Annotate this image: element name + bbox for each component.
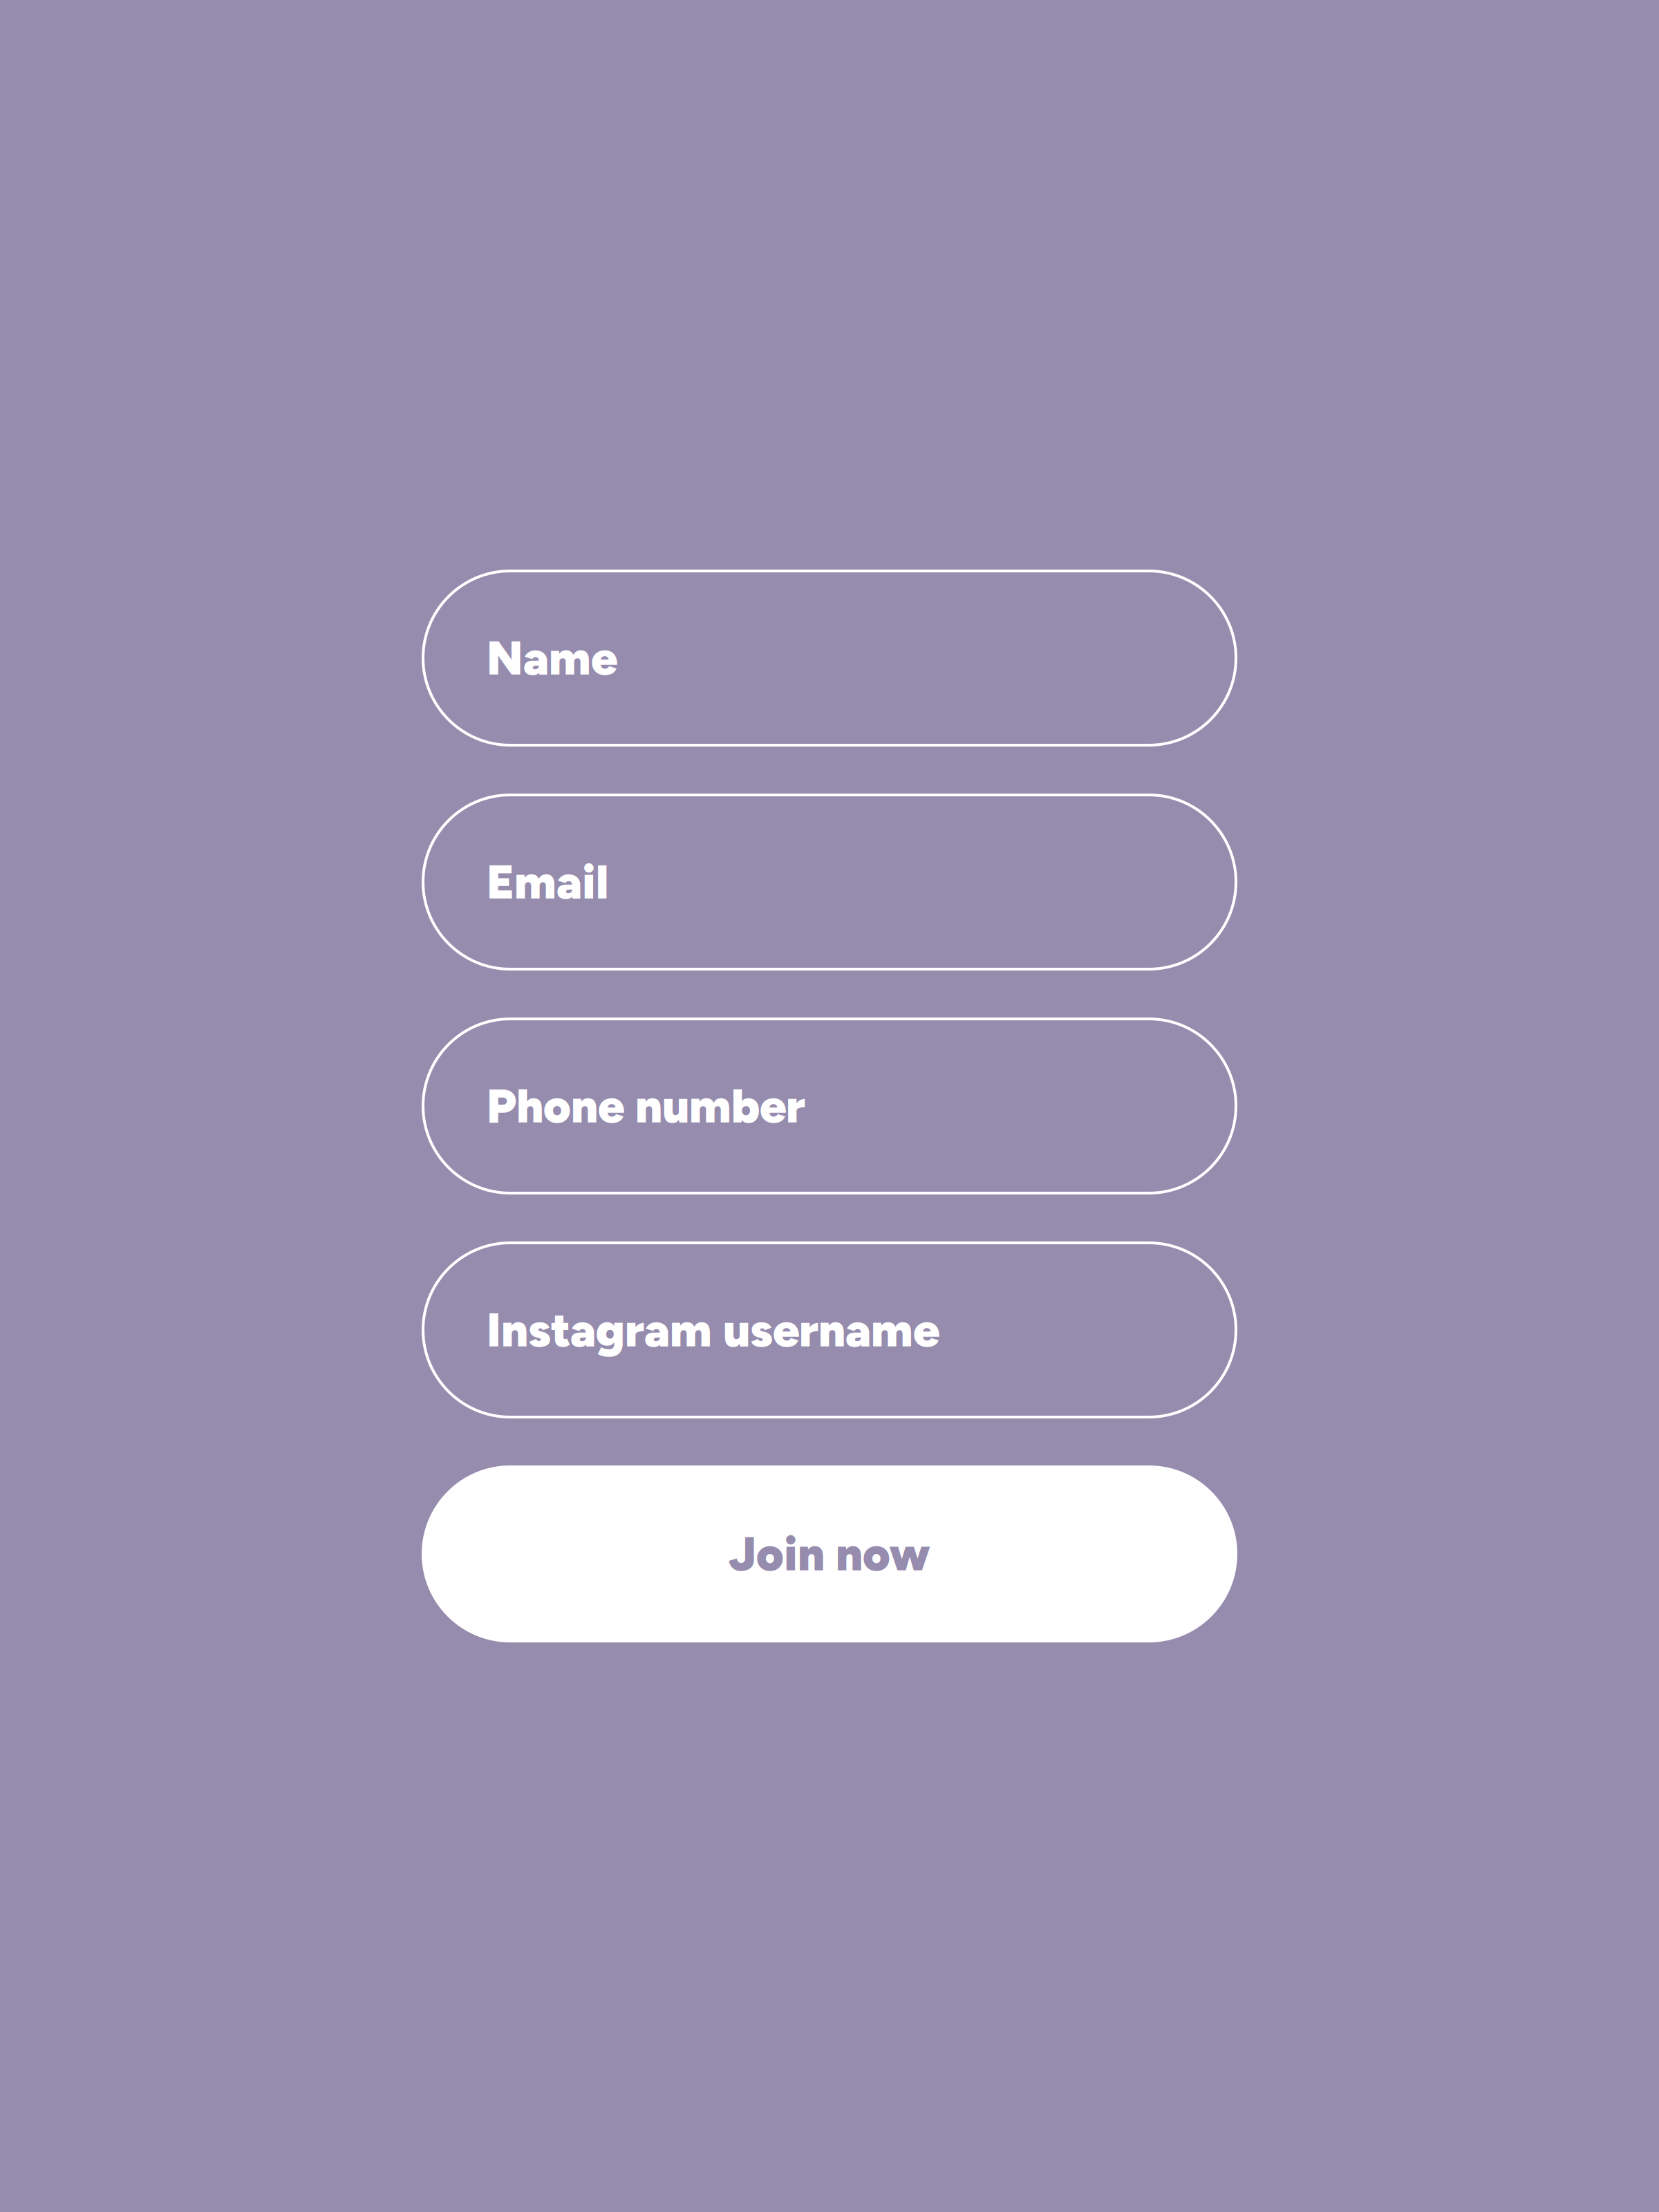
staticText: Phone number: [487, 1078, 805, 1134]
button[interactable]: Join now: [422, 1465, 1237, 1642]
button[interactable]: Name: [422, 570, 1237, 747]
staticText: Join now: [729, 1526, 930, 1582]
staticText: Instagram username: [487, 1302, 939, 1358]
button[interactable]: Instagram username: [422, 1241, 1237, 1418]
staticText: Name: [487, 630, 617, 686]
staticText: Email: [487, 854, 608, 910]
button[interactable]: Phone number: [422, 1018, 1237, 1194]
button[interactable]: Email: [422, 794, 1237, 971]
